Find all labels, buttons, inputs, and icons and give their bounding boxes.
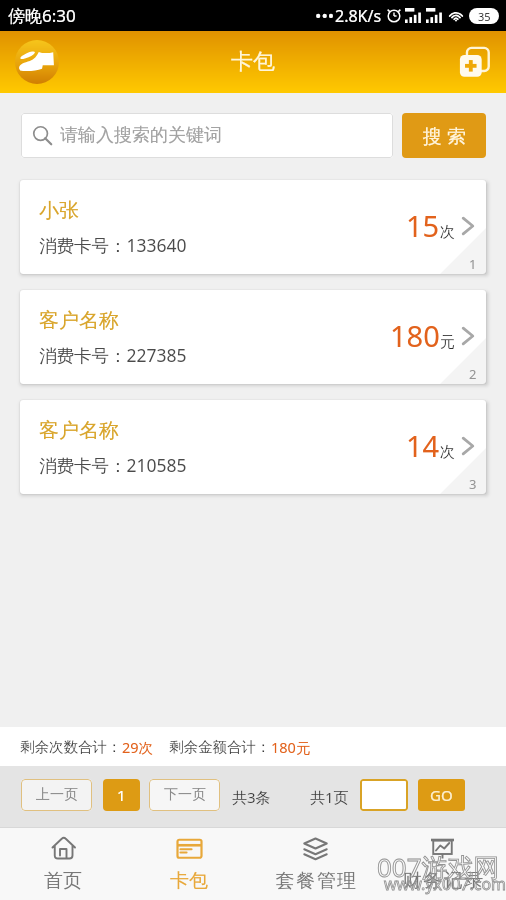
staticText: 财务记录 — [402, 869, 484, 893]
button[interactable]: 搜 索 — [402, 113, 486, 158]
staticText: 首页 — [44, 869, 82, 893]
button[interactable]: 客户名称 — [20, 400, 486, 494]
staticText: 上一页 — [36, 786, 78, 804]
staticText: 007游戏网 — [377, 849, 500, 885]
button[interactable]: 小张 — [20, 180, 486, 274]
staticText: 共1页 — [310, 787, 349, 807]
staticText: 2 — [469, 365, 477, 383]
staticText: 消费卡号：133640 — [39, 233, 187, 257]
button[interactable]: Page number input — [360, 779, 408, 811]
staticText: 卡包 — [231, 48, 275, 76]
button[interactable]: 套餐管理 — [252, 828, 379, 900]
staticText: 29次 — [122, 737, 154, 757]
button[interactable]: 首页 — [0, 828, 126, 900]
staticText: 180 — [390, 316, 440, 355]
staticText: 客户名称 — [39, 418, 119, 443]
staticText: 傍晚6:30 — [8, 4, 76, 27]
staticText: 卡包 — [170, 869, 208, 893]
staticText: 次 — [440, 223, 455, 242]
staticText: 下一页 — [164, 786, 206, 804]
button[interactable]: Logo — [15, 40, 59, 84]
staticText: www.yx007.com — [384, 873, 506, 895]
staticText: 1 — [117, 785, 126, 805]
staticText: 搜 索 — [423, 123, 466, 149]
staticText: ••• — [315, 4, 335, 27]
button[interactable]: GO — [418, 779, 465, 811]
staticText: 小张 — [39, 198, 79, 223]
staticText: 消费卡号：227385 — [39, 343, 187, 367]
staticText: 剩余次数合计： — [20, 738, 122, 756]
button[interactable]: 下一页 — [149, 779, 220, 811]
staticText: 15 — [406, 206, 440, 245]
staticText: 元 — [440, 333, 455, 352]
staticText: 请输入搜索的关键词 — [60, 124, 222, 147]
staticText: 35 — [478, 9, 491, 24]
button[interactable]: 上一页 — [21, 779, 92, 811]
button[interactable]: 财务记录 — [379, 828, 506, 900]
staticText: 客户名称 — [39, 308, 119, 333]
staticText: GO — [430, 785, 453, 805]
staticText: 2.8K/s — [335, 5, 382, 27]
button[interactable]: Add card — [452, 40, 496, 84]
button[interactable]: 1 — [103, 779, 140, 811]
staticText: 共3条 — [232, 787, 271, 807]
button[interactable]: 客户名称 — [20, 290, 486, 384]
staticText: 14 — [406, 426, 440, 465]
staticText: 180元 — [271, 737, 311, 757]
staticText: 3 — [469, 475, 477, 493]
button[interactable]: 卡包 — [126, 828, 252, 900]
staticText: 次 — [440, 443, 455, 462]
staticText: 套餐管理 — [275, 869, 357, 893]
button[interactable]: 请输入搜索的关键词 — [21, 113, 393, 158]
staticText: 消费卡号：210585 — [39, 453, 187, 477]
staticText: 1 — [469, 255, 477, 273]
staticText: 剩余金额合计： — [169, 738, 271, 756]
